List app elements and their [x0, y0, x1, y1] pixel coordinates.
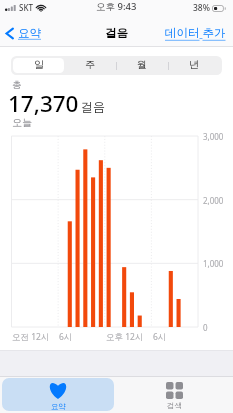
staticText: 요약 [18, 26, 41, 40]
staticText: 요약 [51, 402, 66, 411]
button[interactable]: 요약 [2, 378, 114, 411]
staticText: 월 [137, 58, 147, 71]
staticText: 걸음 [81, 99, 105, 114]
other: 검색 [166, 382, 183, 399]
button[interactable]: 년 [168, 58, 220, 73]
staticText: 년 [189, 58, 199, 71]
staticText: 오후 9:43 [96, 0, 137, 13]
staticText: 0 [203, 322, 208, 333]
staticText: 6시 [153, 331, 167, 343]
staticText: 오전 12시 [12, 331, 50, 343]
staticText: 총 [12, 79, 22, 91]
button[interactable]: 검색 [116, 377, 233, 413]
staticText: 1,000 [203, 258, 224, 269]
staticText: 오늘 [12, 116, 32, 129]
other: 요약 [48, 381, 68, 399]
button[interactable]: 월 [116, 58, 168, 73]
staticText: SKT [19, 2, 33, 13]
button[interactable]: 요약 [0, 26, 47, 40]
staticText: 걸음 [105, 26, 128, 40]
button[interactable]: 데이터 추가 [165, 25, 233, 41]
staticText: 17,370 [8, 88, 79, 119]
staticText: 2,000 [203, 195, 224, 206]
staticText: 일 [34, 58, 44, 71]
staticText: 검색 [167, 401, 182, 410]
staticText: 주 [85, 58, 95, 71]
staticText: 6시 [59, 331, 73, 343]
button[interactable]: 일 [13, 58, 64, 73]
button[interactable]: 주 [64, 58, 116, 73]
staticText: 3,000 [203, 131, 224, 142]
staticText: 38% [193, 2, 210, 14]
staticText: 오후 12시 [106, 331, 144, 343]
